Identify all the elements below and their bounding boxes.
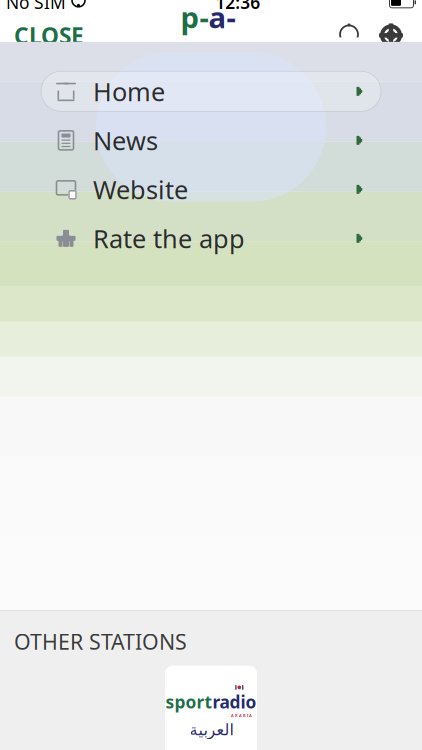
- button[interactable]: News: [0, 120, 422, 160]
- staticText: OTHER STATIONS: [14, 627, 187, 656]
- staticText: CLOSE: [14, 20, 84, 50]
- button[interactable]: CLOSE: [0, 12, 98, 58]
- staticText: sport: [165, 690, 212, 713]
- staticText: radio: [212, 690, 256, 713]
- staticText: Website: [93, 172, 188, 206]
- button[interactable]: Home: [0, 71, 422, 111]
- staticText: Home: [93, 74, 165, 108]
- staticText: العربية: [189, 721, 233, 739]
- staticText: A R A B I A: [231, 713, 252, 718]
- staticText: News: [93, 123, 158, 157]
- button[interactable]: Notifications: [328, 16, 370, 54]
- button[interactable]: Settings: [370, 16, 412, 54]
- staticText: No SIM: [6, 0, 66, 14]
- button[interactable]: Sport Radio Arabia station: [165, 666, 257, 750]
- button[interactable]: Rate the app: [0, 218, 422, 258]
- button[interactable]: Website: [0, 169, 422, 209]
- staticText: Rate the app: [93, 221, 245, 255]
- staticText: radio: [208, 0, 236, 114]
- staticText: 12:36: [215, 0, 260, 14]
- staticText: sport: [180, 0, 208, 114]
